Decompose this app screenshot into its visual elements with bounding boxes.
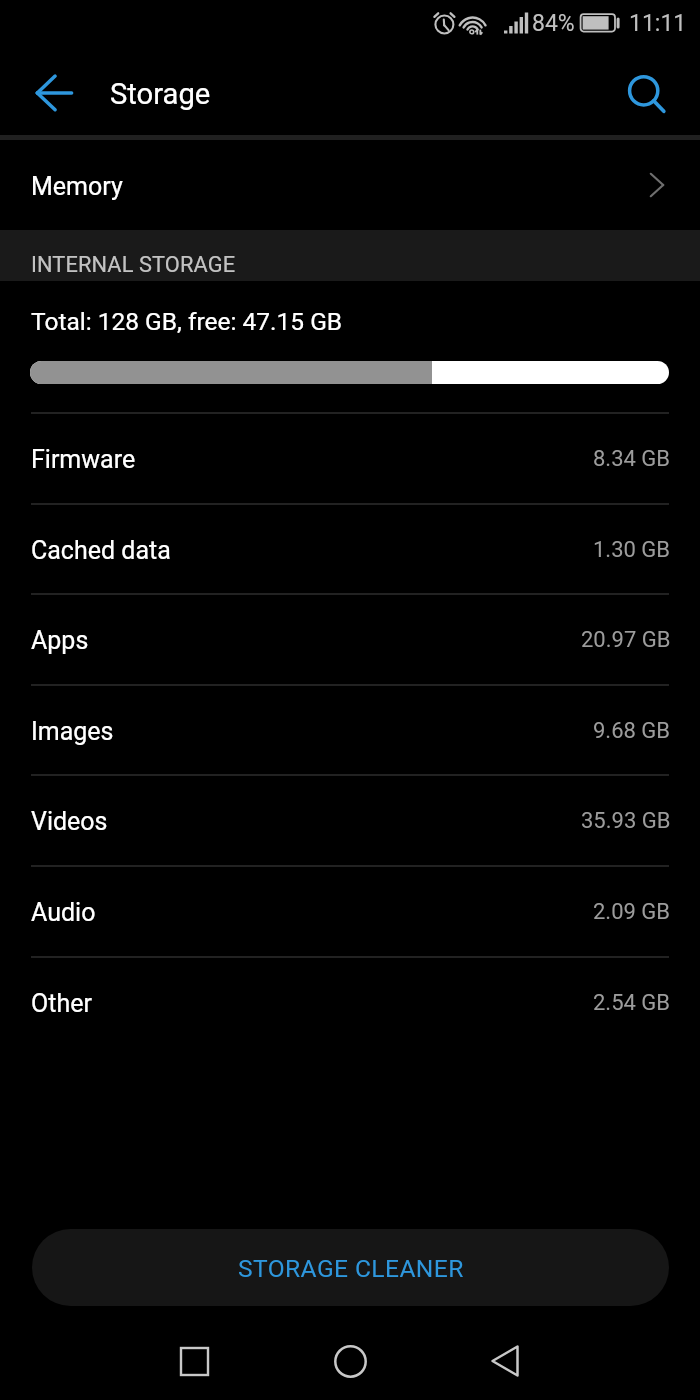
button[interactable]: Firmware xyxy=(0,412,700,502)
staticText: Apps xyxy=(31,626,89,655)
button[interactable]: Apps xyxy=(0,593,700,683)
staticText: 84% xyxy=(532,10,575,37)
staticText: INTERNAL STORAGE xyxy=(31,252,236,278)
button[interactable]: Cached data xyxy=(0,503,700,593)
button[interactable]: STORAGE CLEANER xyxy=(32,1229,669,1306)
button[interactable]: Memory xyxy=(0,139,700,230)
staticText: Total: 128 GB, free: 47.15 GB xyxy=(31,307,343,336)
staticText: Firmware xyxy=(31,445,136,474)
button[interactable]: Other xyxy=(0,956,700,1046)
staticText: 9.68 GB xyxy=(593,718,671,744)
button[interactable]: Recents xyxy=(166,1333,222,1389)
button[interactable]: Search xyxy=(618,65,674,121)
staticText: Storage xyxy=(110,77,211,111)
button[interactable]: Back xyxy=(477,1333,533,1389)
staticText: 2.09 GB xyxy=(593,899,671,925)
button[interactable]: Videos xyxy=(0,774,700,864)
button[interactable]: Images xyxy=(0,684,700,774)
button[interactable]: Audio xyxy=(0,865,700,955)
staticText: 11:11 xyxy=(629,10,687,37)
staticText: 20.97 GB xyxy=(581,627,671,653)
staticText: Images xyxy=(31,717,114,746)
staticText: 2.54 GB xyxy=(593,990,671,1016)
staticText: 35.93 GB xyxy=(581,808,671,834)
button[interactable]: Back xyxy=(26,65,82,121)
staticText: Videos xyxy=(31,807,108,836)
staticText: 8.34 GB xyxy=(593,446,671,472)
staticText: 1.30 GB xyxy=(593,537,671,563)
staticText: Memory xyxy=(31,172,123,201)
staticText: STORAGE CLEANER xyxy=(238,1254,464,1283)
button[interactable]: Home xyxy=(322,1333,378,1389)
staticText: Other xyxy=(31,989,92,1018)
staticText: Audio xyxy=(31,898,96,927)
staticText: Cached data xyxy=(31,536,171,565)
